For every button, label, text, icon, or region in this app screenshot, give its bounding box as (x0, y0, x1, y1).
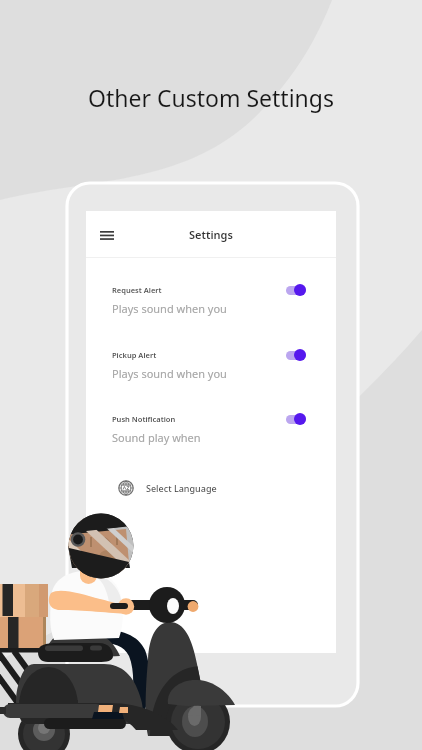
staticText: Plays sound when you (112, 301, 227, 316)
staticText: Select Language (146, 482, 217, 494)
button[interactable]: Toggle Push Notification (285, 412, 311, 426)
button[interactable]: Pickup Alert (101, 337, 320, 396)
button[interactable]: Menu (94, 222, 120, 248)
staticText: Other Custom Settings (0, 82, 422, 113)
button[interactable]: Push Notification (101, 401, 320, 460)
staticText: Push Notification (112, 414, 176, 424)
button[interactable]: Toggle Request Alert (285, 283, 311, 297)
button[interactable]: Request Alert (101, 272, 320, 331)
staticText: Plays sound when you (112, 366, 227, 381)
staticText: Pickup Alert (112, 350, 157, 360)
staticText: Settings (189, 227, 233, 242)
button[interactable]: Toggle Pickup Alert (285, 348, 311, 362)
staticText: Request Alert (112, 285, 162, 295)
button[interactable]: Select Language (101, 468, 320, 507)
staticText: Sound play when (112, 430, 201, 445)
